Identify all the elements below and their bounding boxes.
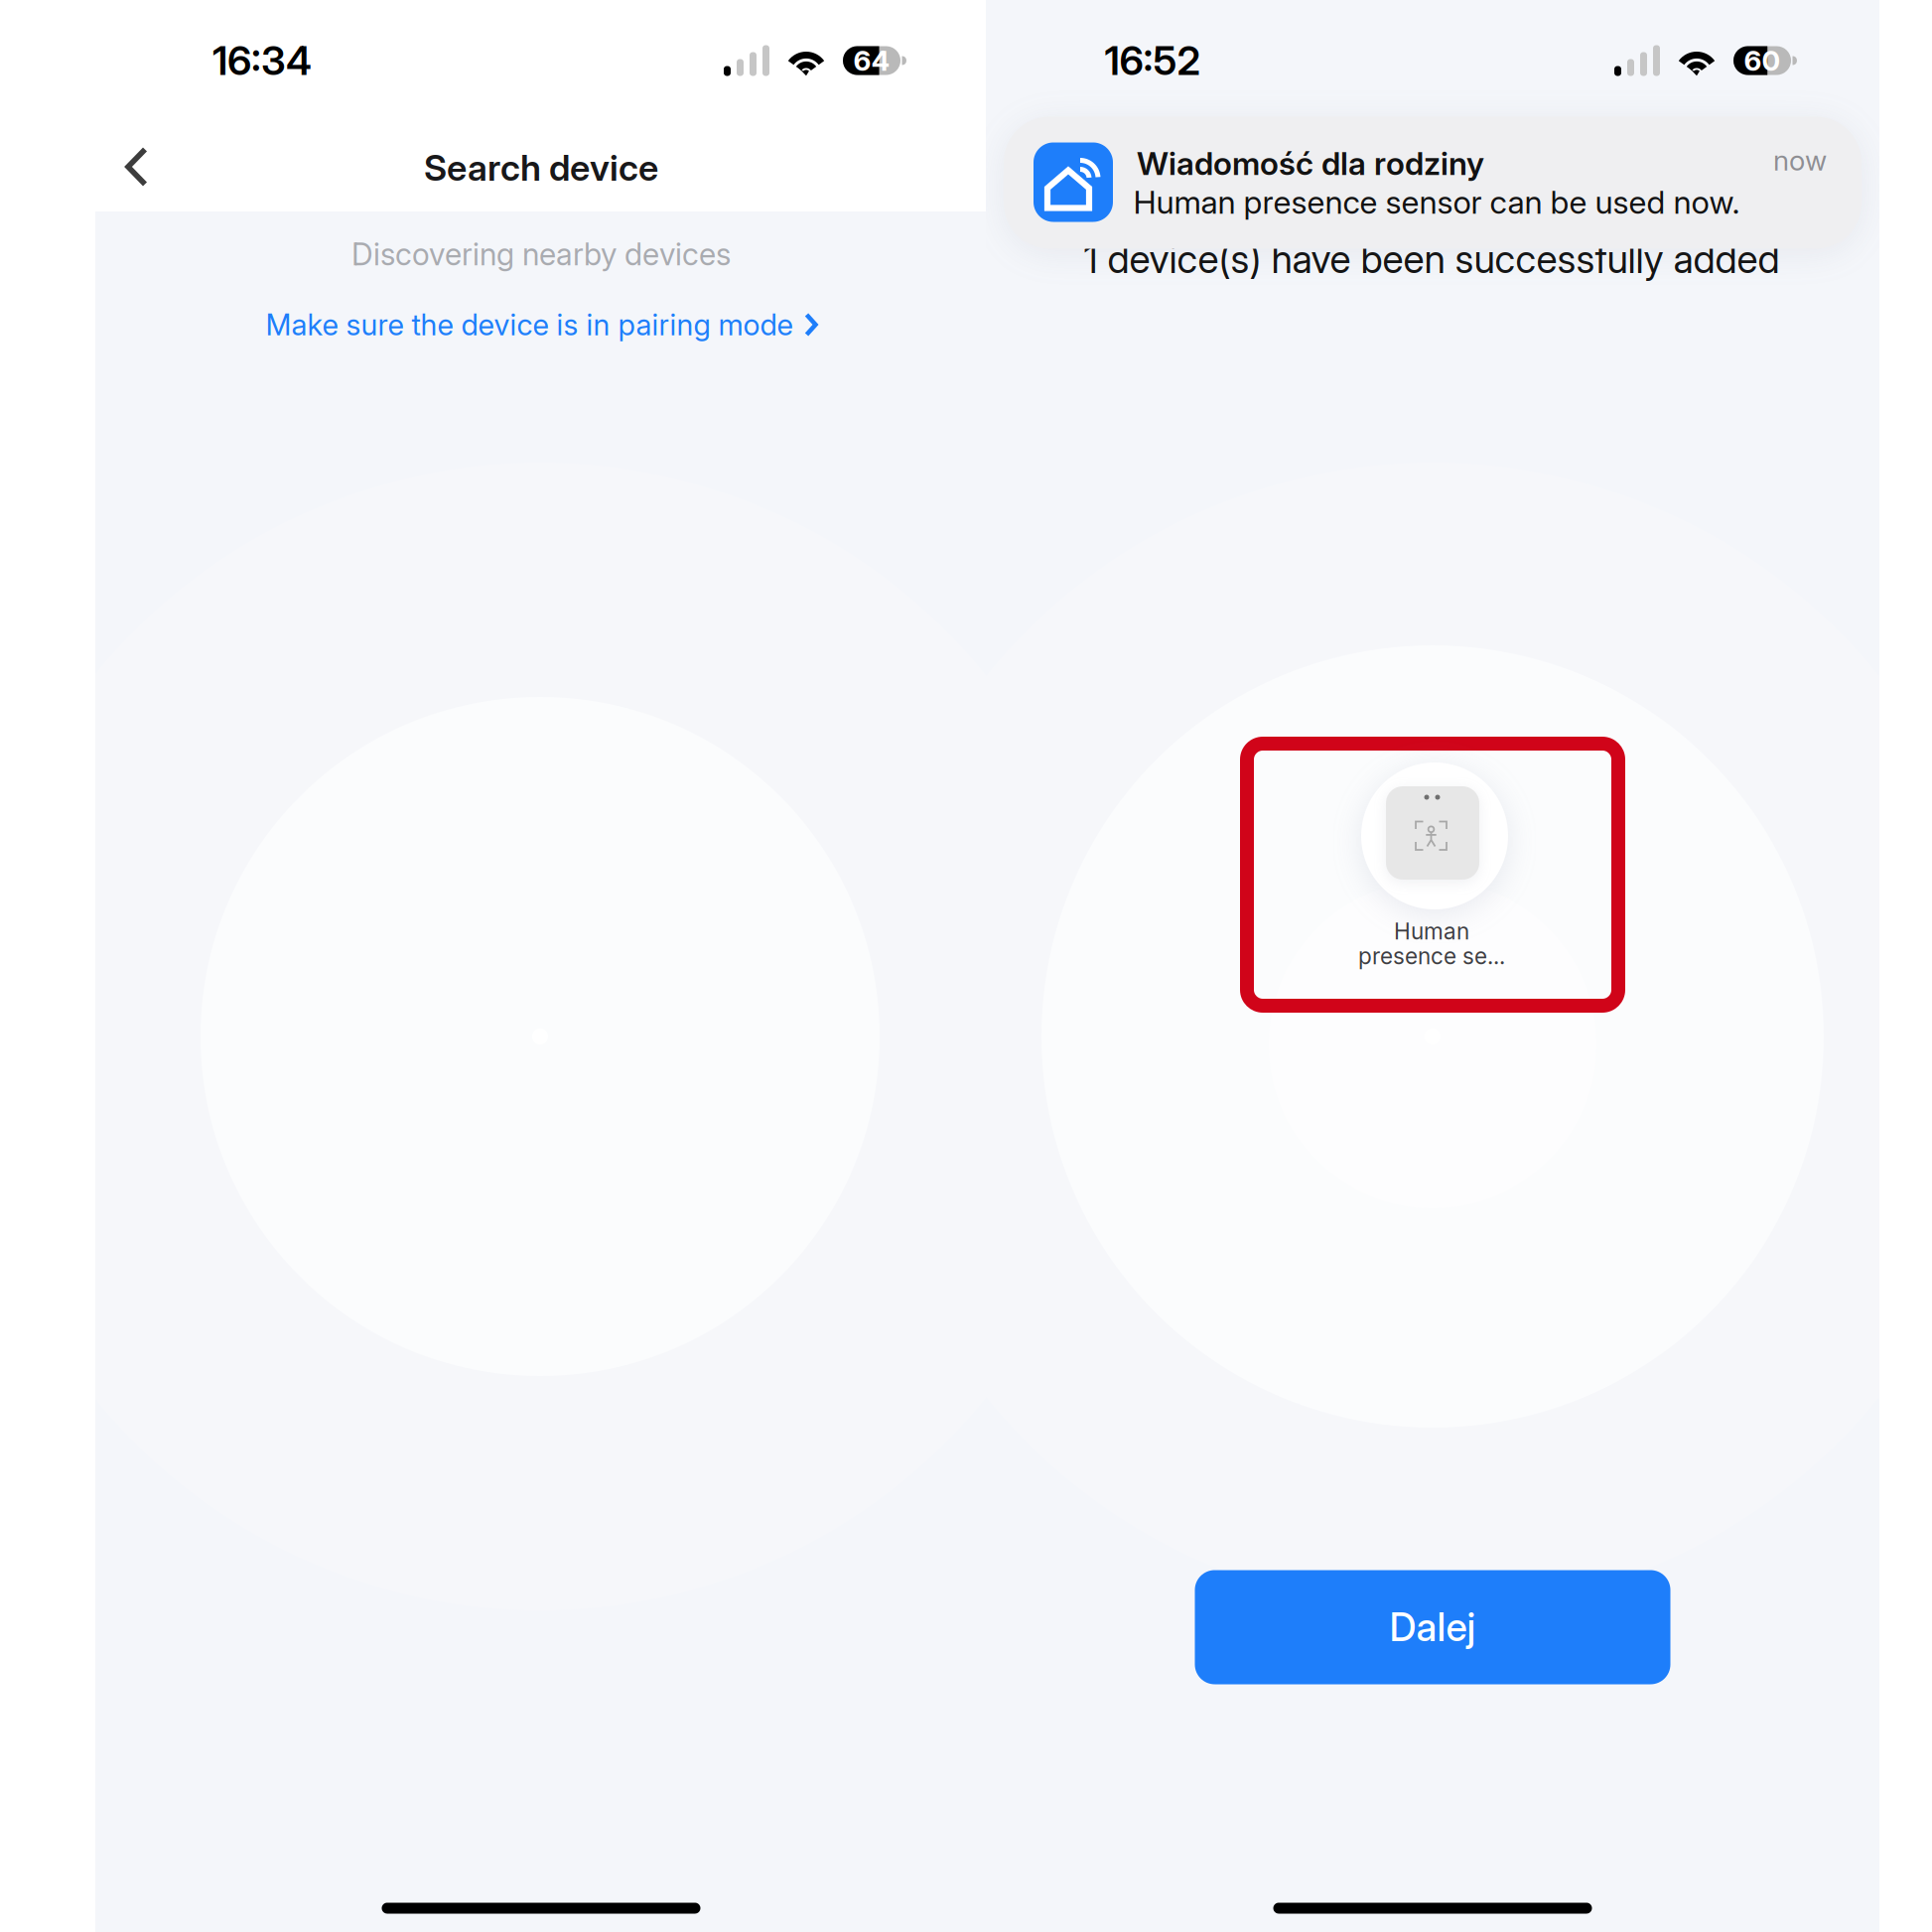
- staticText: Make sure the device is in pairing mode: [266, 307, 793, 342]
- button[interactable]: Back: [104, 138, 160, 195]
- button[interactable]: Make sure the device is in pairing mode: [266, 307, 819, 342]
- staticText: now: [1773, 144, 1827, 177]
- staticText: 60: [1744, 44, 1781, 77]
- staticText: Dalej: [1389, 1604, 1476, 1650]
- staticText: Search device: [424, 146, 658, 189]
- staticText: Human presence sensor can be used now.: [1133, 183, 1740, 221]
- button[interactable]: Dalej: [1195, 1570, 1670, 1684]
- staticText: Wiadomość dla rodziny: [1137, 144, 1484, 182]
- staticText: 16:52: [1104, 37, 1201, 85]
- staticText: Discovering nearby devices: [351, 236, 731, 273]
- staticText: 64: [853, 44, 890, 77]
- staticText: Human: [1394, 918, 1469, 945]
- staticText: 1 device(s) have been successfully added: [1084, 236, 1780, 282]
- staticText: presence se...: [1358, 942, 1505, 970]
- staticText: 16:34: [212, 37, 312, 85]
- button[interactable]: Wiadomość dla rodziny: [1004, 117, 1862, 249]
